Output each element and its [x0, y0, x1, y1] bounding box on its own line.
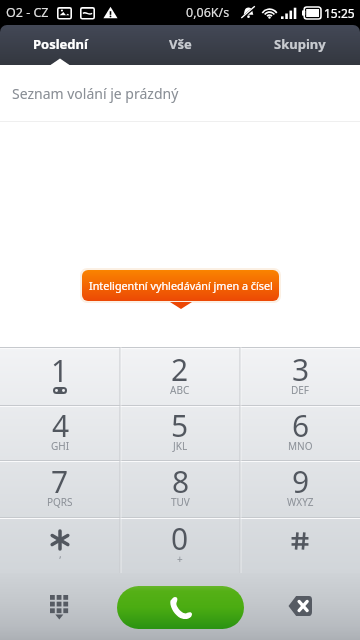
staticText: 8 — [172, 461, 190, 502]
button[interactable]: Keypad — [0, 573, 120, 640]
staticText: 1 — [51, 350, 69, 391]
staticText: TUV — [171, 495, 190, 509]
staticText: 9 — [292, 461, 310, 502]
staticText: 4 — [52, 405, 70, 446]
staticText: 15:25 — [324, 5, 355, 21]
button[interactable]: 5 — [120, 405, 240, 460]
button[interactable]: 2 — [120, 347, 240, 405]
button[interactable]: 9 — [240, 460, 360, 517]
staticText: 0 — [171, 518, 189, 559]
staticText: Vše — [169, 35, 192, 53]
button[interactable]: , — [0, 517, 120, 573]
staticText: , — [59, 547, 62, 561]
staticText: GHI — [51, 439, 70, 453]
button[interactable]: 8 — [120, 460, 240, 517]
staticText: 0,06K/s — [186, 4, 230, 21]
staticText: DEF — [291, 383, 310, 397]
staticText: 2 — [171, 349, 189, 390]
button[interactable]: 3 — [240, 347, 360, 405]
staticText: JKL — [173, 439, 188, 453]
button[interactable]: Skupiny — [240, 25, 360, 65]
staticText: Inteligentní vyhledávání jmen a čísel — [89, 278, 273, 293]
button[interactable]: Poslední — [0, 25, 120, 65]
button[interactable]: 4 — [0, 405, 120, 460]
staticText: Seznam volání je prázdný — [12, 84, 179, 103]
button[interactable] — [240, 517, 360, 573]
staticText: PQRS — [47, 495, 73, 509]
button[interactable]: 6 — [240, 405, 360, 460]
button[interactable]: Call — [117, 586, 244, 629]
button[interactable]: Vše — [120, 25, 240, 65]
staticText: Skupiny — [274, 35, 326, 53]
staticText: + — [177, 552, 183, 566]
staticText: 6 — [292, 405, 310, 446]
button[interactable]: Inteligentní vyhledávání jmen a čísel — [82, 270, 279, 301]
button[interactable]: 0 — [120, 517, 240, 573]
staticText: 5 — [171, 405, 189, 446]
staticText: ABC — [170, 383, 190, 397]
staticText: 7 — [51, 461, 69, 502]
button[interactable]: 1 — [0, 347, 120, 405]
staticText: 3 — [292, 349, 310, 390]
button[interactable]: 7 — [0, 460, 120, 517]
staticText: Poslední — [33, 35, 88, 53]
button[interactable]: Delete — [240, 573, 360, 640]
staticText: WXYZ — [287, 495, 314, 509]
staticText: MNO — [288, 439, 313, 453]
staticText: O2 - CZ — [6, 4, 49, 21]
